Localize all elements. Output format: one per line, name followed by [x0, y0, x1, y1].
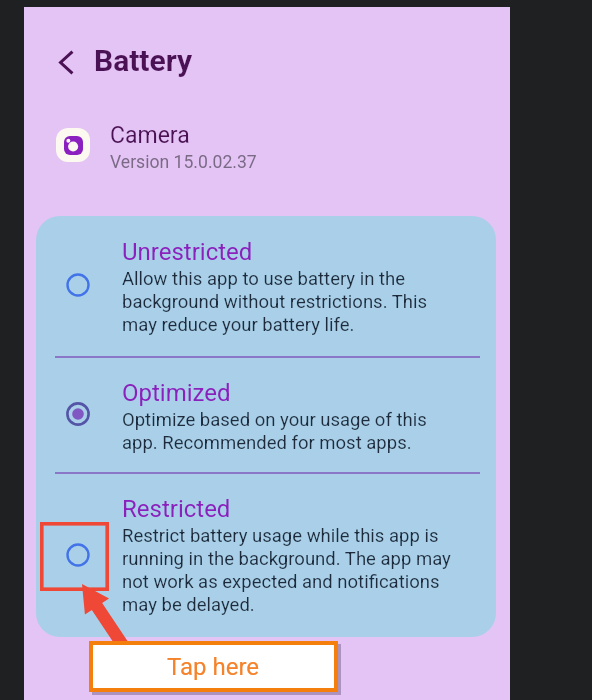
button[interactable]: Restricted	[36, 474, 496, 637]
button[interactable]: Unrestricted	[36, 216, 496, 356]
staticText: Camera	[110, 122, 190, 149]
button[interactable]: Optimized	[36, 358, 496, 472]
staticText: Unrestricted	[122, 238, 253, 266]
button[interactable]: Back	[46, 42, 86, 82]
staticText: Allow this app to use battery in the bac…	[122, 267, 428, 336]
button[interactable]: Tap here	[89, 641, 338, 692]
staticText: Restricted	[122, 495, 231, 523]
staticText: Restrict battery usage while this app is…	[122, 524, 451, 616]
staticText: Optimize based on your usage of this app…	[122, 408, 427, 454]
staticText: Tap here	[167, 653, 260, 681]
staticText: Battery	[94, 43, 193, 78]
staticText: Optimized	[122, 379, 231, 407]
staticText: Version 15.0.02.37	[110, 152, 257, 173]
